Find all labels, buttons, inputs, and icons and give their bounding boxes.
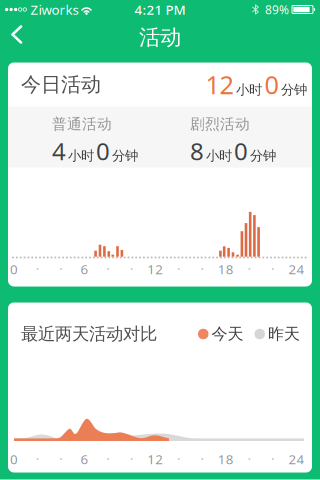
staticText: Ziworks xyxy=(30,1,78,18)
staticText: 普通活动 xyxy=(52,115,112,133)
staticText: 0 xyxy=(264,68,278,101)
staticText: 分钟 xyxy=(281,82,307,98)
staticText: 小时 xyxy=(206,148,232,164)
staticText: 今天 xyxy=(211,324,243,344)
staticText: 89% xyxy=(265,1,289,17)
staticText: 小时 xyxy=(236,82,262,98)
staticText: 18 xyxy=(218,450,234,468)
staticText: 小时 xyxy=(68,148,94,164)
button[interactable]: Back xyxy=(0,24,34,50)
staticText: 0 xyxy=(10,260,18,278)
staticText: 分钟 xyxy=(112,148,138,164)
staticText: 最近两天活动对比 xyxy=(21,323,157,345)
staticText: 活动 xyxy=(139,24,181,51)
staticText: 12 xyxy=(147,450,163,468)
staticText: 4:21 PM xyxy=(134,1,185,18)
staticText: 24 xyxy=(288,450,304,468)
staticText: 0 xyxy=(96,135,110,167)
staticText: 4 xyxy=(52,135,66,167)
staticText: 6 xyxy=(81,450,89,468)
staticText: 8 xyxy=(190,135,204,167)
staticText: 24 xyxy=(288,260,304,278)
staticText: 6 xyxy=(81,260,89,278)
staticText: 12 xyxy=(205,68,233,101)
staticText: 分钟 xyxy=(250,148,276,164)
staticText: 昨天 xyxy=(268,324,300,344)
staticText: 0 xyxy=(10,450,18,468)
staticText: 12 xyxy=(147,260,163,278)
staticText: 0 xyxy=(234,135,248,167)
staticText: 今日活动 xyxy=(21,72,101,97)
staticText: 剧烈活动 xyxy=(190,115,250,133)
staticText: 18 xyxy=(218,260,234,278)
